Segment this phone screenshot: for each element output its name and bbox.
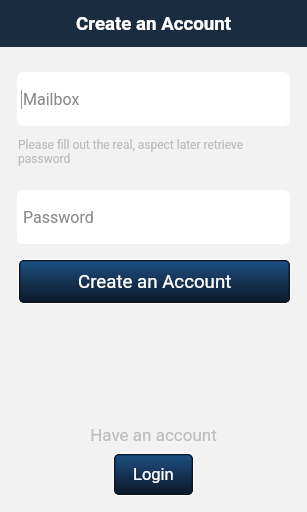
button[interactable]: Login	[114, 454, 193, 495]
button[interactable]: Mailbox	[17, 72, 290, 126]
staticText: Have an account	[0, 425, 307, 445]
staticText: Login	[133, 465, 174, 484]
staticText: Create an Account	[76, 13, 232, 35]
staticText: Mailbox	[23, 90, 80, 109]
button[interactable]: Create an Account	[19, 260, 290, 303]
staticText: Password	[23, 208, 94, 227]
button[interactable]: Create an Account title bar	[0, 0, 307, 47]
staticText: Create an Account	[78, 271, 232, 293]
button[interactable]: Password	[17, 190, 290, 244]
staticText: Please fill out the real, aspect later r…	[18, 138, 257, 166]
